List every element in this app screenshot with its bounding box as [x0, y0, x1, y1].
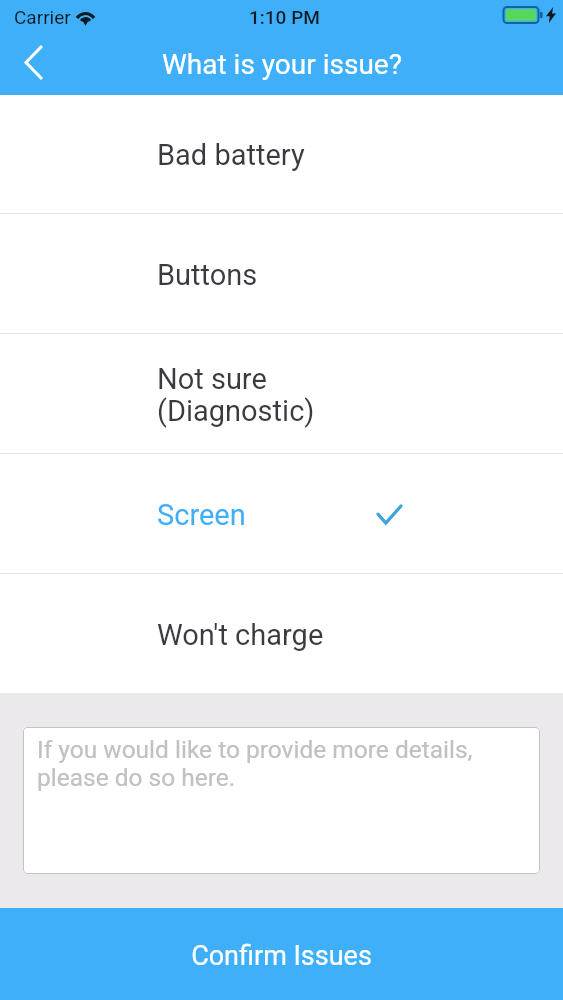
staticText: Buttons [157, 258, 258, 292]
staticText: 1:10 PM [249, 6, 320, 28]
staticText: Confirm Issues [191, 940, 372, 972]
button[interactable]: Confirm Issues [0, 908, 563, 1000]
staticText: What is your issue? [162, 48, 402, 81]
staticText: Bad battery [157, 138, 305, 172]
button[interactable]: Bad battery [0, 95, 563, 213]
staticText: Won't charge [157, 618, 324, 652]
staticText: Screen [157, 498, 246, 532]
button[interactable]: Screen [0, 454, 563, 573]
button[interactable]: Buttons [0, 214, 563, 333]
button[interactable]: If you would like to provide more detail… [23, 727, 540, 874]
button[interactable]: Not sure (Diagnostic) [0, 334, 563, 453]
button[interactable]: Won't charge [0, 574, 563, 693]
button[interactable]: Back [4, 36, 60, 95]
staticText: Carrier [14, 6, 71, 28]
staticText: Not sure (Diagnostic) [157, 362, 315, 428]
staticText: If you would like to provide more detail… [37, 735, 473, 792]
